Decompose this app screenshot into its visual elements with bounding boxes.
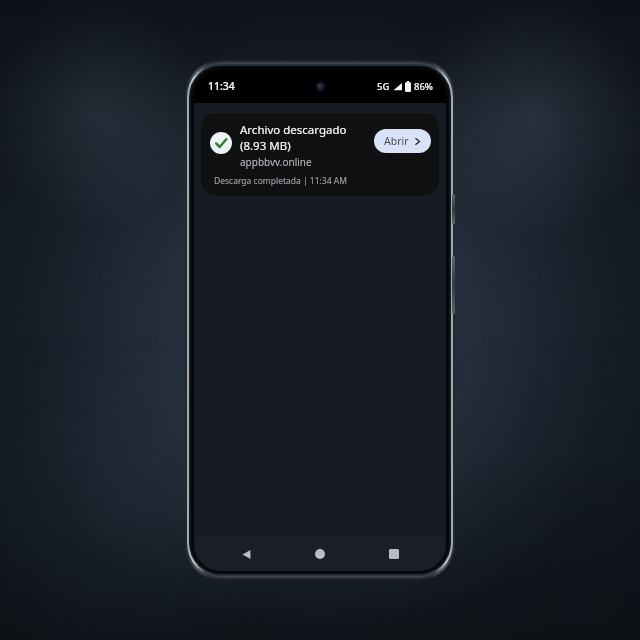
staticText: Archivo descargado bbox=[240, 122, 347, 138]
staticText: 11:34 bbox=[208, 79, 235, 93]
button[interactable]: Archivo descargado bbox=[201, 113, 439, 196]
button[interactable]: Home bbox=[298, 537, 342, 571]
staticText: Abrir bbox=[384, 134, 409, 148]
button[interactable]: Abrir bbox=[374, 129, 431, 153]
staticText: (8.93 MB) bbox=[240, 138, 291, 154]
button[interactable]: Back bbox=[224, 537, 268, 571]
staticText: 86% bbox=[414, 80, 433, 93]
staticText: appbbvv.online bbox=[240, 155, 312, 169]
staticText: Descarga completada | 11:34 AM bbox=[214, 175, 347, 187]
button[interactable]: Recent apps bbox=[372, 537, 416, 571]
staticText: 5G bbox=[377, 80, 390, 93]
